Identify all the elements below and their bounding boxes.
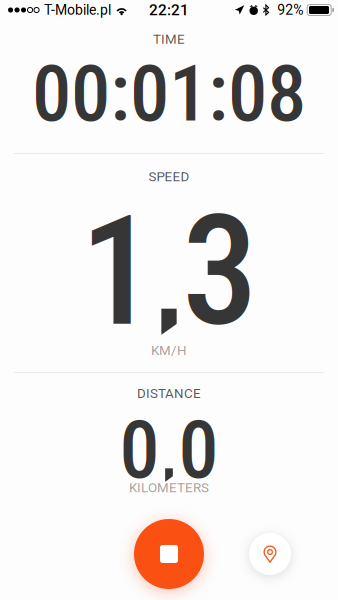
staticText: 3 (182, 183, 258, 361)
button[interactable]: Map (240, 508, 300, 600)
staticText: 0 (119, 403, 159, 497)
staticText: 00:01:08 (32, 48, 306, 140)
button[interactable]: Stop (124, 508, 214, 600)
staticText: DISTANCE (137, 386, 201, 401)
staticText: T-Mobile.pl (44, 2, 111, 18)
staticText: SPEED (148, 169, 189, 185)
staticText: KM/H (151, 343, 187, 358)
staticText: TIME (153, 31, 185, 47)
staticText: 1 (80, 183, 156, 361)
staticText: KILOMETERS (129, 480, 209, 496)
staticText: 92% (277, 2, 303, 18)
staticText: 22:21 (149, 1, 189, 19)
staticText: 0 (178, 403, 218, 497)
